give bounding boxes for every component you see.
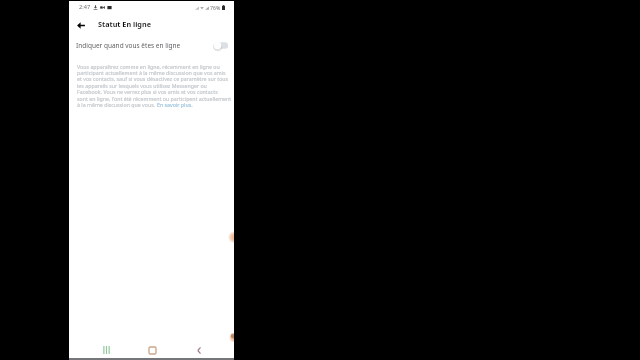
staticText: sont en ligne, l'ont été récemment ou pa… (77, 95, 232, 102)
staticText: Statut En ligne (98, 19, 151, 29)
staticText: Facebook. Vous ne verrez plus si vos ami… (77, 88, 218, 95)
staticText: Vous apparaîtrez comme en ligne, récemme… (77, 63, 220, 70)
button[interactable]: Back (190, 342, 207, 358)
button[interactable]: Back (73, 17, 89, 33)
staticText: et vos contacts, sauf si vous désactivez… (77, 75, 229, 82)
staticText: 76% (210, 4, 221, 11)
staticText: 2:47 (79, 3, 91, 11)
staticText: les appareils sur lesquels vous utilisez… (77, 82, 207, 89)
button[interactable]: Home (144, 342, 161, 358)
staticText: participant actuellement à la même discu… (77, 69, 226, 76)
button[interactable]: Recent apps (98, 342, 115, 358)
button[interactable]: Indiquer quand vous êtes en ligne (69, 37, 234, 55)
button[interactable]: Indiquer quand vous êtes en ligne (211, 39, 233, 52)
staticText: à la même discussion que vous. (77, 101, 157, 108)
button[interactable]: En savoir plus. (157, 101, 193, 108)
staticText: Indiquer quand vous êtes en ligne (76, 41, 181, 50)
